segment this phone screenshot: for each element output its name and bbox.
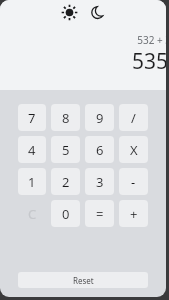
button[interactable]: - (119, 168, 148, 195)
button[interactable]: Reset (18, 272, 148, 288)
staticText: / (131, 109, 136, 127)
staticText: 0 (62, 205, 70, 223)
staticText: + (130, 205, 138, 223)
staticText: 8 (62, 109, 70, 127)
staticText: 535 (131, 47, 166, 76)
staticText: - (131, 173, 136, 191)
button[interactable]: 0 (51, 200, 80, 227)
button[interactable]: 5 (51, 136, 80, 163)
staticText: 3 (96, 173, 104, 191)
button[interactable]: X (119, 136, 148, 163)
staticText: 1 (28, 173, 36, 191)
button[interactable]: / (119, 104, 148, 131)
staticText: 9 (96, 109, 104, 127)
button[interactable]: + (119, 200, 148, 227)
staticText: 7 (28, 109, 36, 127)
button[interactable]: 8 (51, 104, 80, 131)
button[interactable]: Light theme (59, 2, 79, 22)
button[interactable]: Dark theme (87, 2, 107, 22)
button[interactable]: 3 (85, 168, 114, 195)
button[interactable]: 1 (18, 168, 46, 195)
staticText: Reset (73, 275, 94, 286)
staticText: X (130, 141, 138, 159)
staticText: 532 + 3 (137, 33, 166, 46)
staticText: 4 (28, 141, 36, 159)
staticText: = (96, 205, 104, 223)
button[interactable]: 4 (18, 136, 46, 163)
button[interactable]: 6 (85, 136, 114, 163)
staticText: 6 (96, 141, 104, 159)
staticText: 2 (62, 173, 70, 191)
button[interactable]: 2 (51, 168, 80, 195)
staticText: 5 (62, 141, 70, 159)
button[interactable]: = (85, 200, 114, 227)
button[interactable]: 7 (18, 104, 46, 131)
button[interactable]: 9 (85, 104, 114, 131)
staticText: C (28, 205, 37, 223)
